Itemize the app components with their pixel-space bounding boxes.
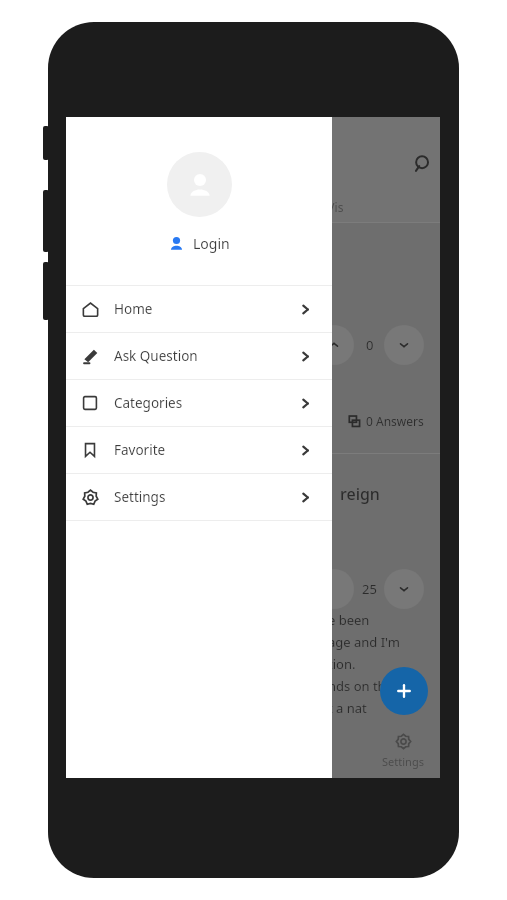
staticText: reign: [340, 483, 380, 505]
button[interactable]: Search: [406, 149, 436, 179]
button[interactable]: Profile picture: [167, 152, 232, 217]
button[interactable]: Home: [66, 286, 332, 332]
button[interactable]: Favorite: [66, 427, 332, 473]
button[interactable]: Ask Question: [66, 333, 332, 379]
button[interactable]: Add question: [380, 667, 428, 715]
staticText: Favorite: [114, 441, 166, 459]
button[interactable]: Downvote: [384, 325, 424, 365]
staticText: t a nat: [328, 699, 367, 717]
staticText: Settings: [382, 754, 424, 769]
staticText: Ask Question: [114, 347, 198, 365]
staticText: Home: [114, 300, 153, 318]
staticText: nds on th: [328, 677, 386, 695]
staticText: Login: [193, 234, 230, 253]
staticText: Settings: [114, 488, 166, 506]
staticText: Most Vis: [296, 199, 344, 215]
button[interactable]: Settings: [366, 733, 440, 769]
staticText: age and I'm: [328, 633, 400, 651]
button[interactable]: Upvote: [314, 325, 354, 365]
button[interactable]: Categories: [66, 380, 332, 426]
button[interactable]: estion: [66, 195, 274, 219]
staticText: tion.: [328, 655, 356, 673]
button[interactable]: Settings: [66, 474, 332, 520]
staticText: 25: [362, 580, 377, 598]
button[interactable]: 0 Answers: [348, 411, 424, 431]
staticText: e been: [328, 611, 370, 629]
staticText: 0 Answers: [366, 413, 424, 429]
staticText: 0: [366, 336, 374, 354]
staticText: Categories: [114, 394, 183, 412]
button[interactable]: Most Vis: [296, 195, 344, 219]
button[interactable]: Login: [66, 230, 332, 256]
button[interactable]: Upvote: [314, 569, 354, 609]
button[interactable]: Downvote: [384, 569, 424, 609]
